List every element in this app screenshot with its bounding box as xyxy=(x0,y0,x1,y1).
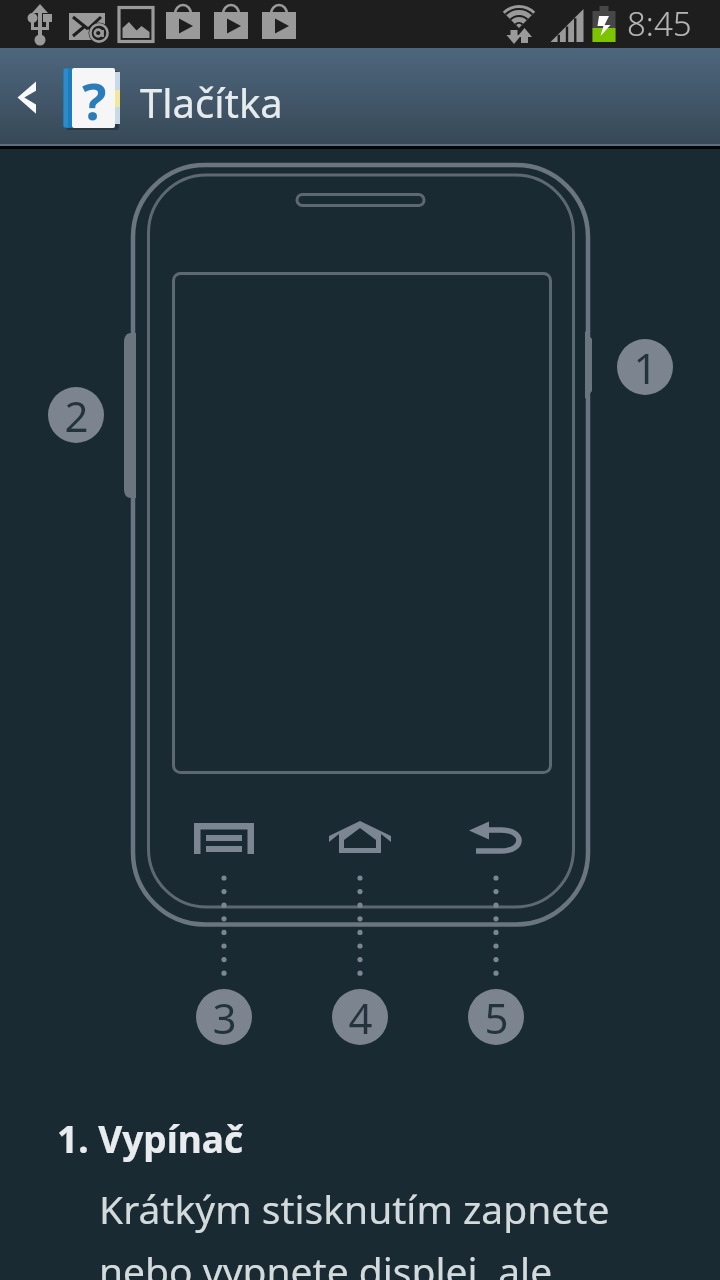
staticText: Tlačítka xyxy=(140,75,283,129)
staticText: 2 xyxy=(64,387,89,443)
staticText: 4 xyxy=(348,989,373,1045)
staticText: 5 xyxy=(484,989,509,1045)
button[interactable]: Back xyxy=(0,48,62,144)
staticText: 1. Vypínač xyxy=(57,1113,244,1163)
staticText: 3 xyxy=(212,989,237,1045)
button[interactable]: 2 xyxy=(48,387,104,443)
button[interactable]: 1 xyxy=(617,339,673,395)
button[interactable]: 4 xyxy=(332,989,388,1045)
button[interactable]: 3 xyxy=(196,989,252,1045)
staticText: 1 xyxy=(633,339,658,395)
button[interactable]: 5 xyxy=(468,989,524,1045)
staticText: Krátkým stisknutím zapnete nebo vypnete … xyxy=(99,1182,610,1280)
staticText: ? xyxy=(82,65,107,126)
staticText: 8:45 xyxy=(627,1,692,46)
